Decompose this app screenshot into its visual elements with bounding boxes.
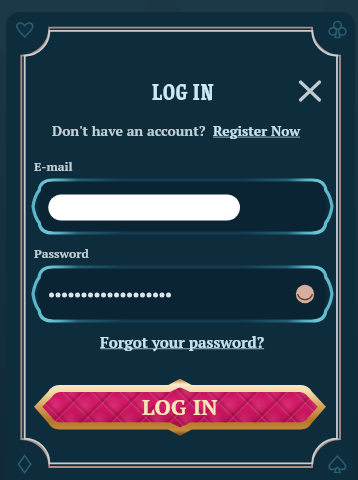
- staticText: Forgot your password?: [100, 332, 265, 352]
- staticText: Register Now: [213, 122, 301, 140]
- staticText: Don't have an account?: [52, 122, 210, 140]
- button[interactable]: Close: [296, 77, 324, 105]
- staticText: E-mail: [34, 158, 73, 174]
- button[interactable]: Register Now: [213, 122, 301, 140]
- button[interactable]: LOG IN: [140, 72, 226, 102]
- button[interactable]: Forgot your password?: [100, 332, 265, 352]
- staticText: Password: [34, 245, 89, 261]
- staticText: LOG IN: [152, 72, 215, 102]
- button[interactable]: LOG IN: [34, 379, 326, 435]
- staticText: LOG IN: [142, 393, 219, 421]
